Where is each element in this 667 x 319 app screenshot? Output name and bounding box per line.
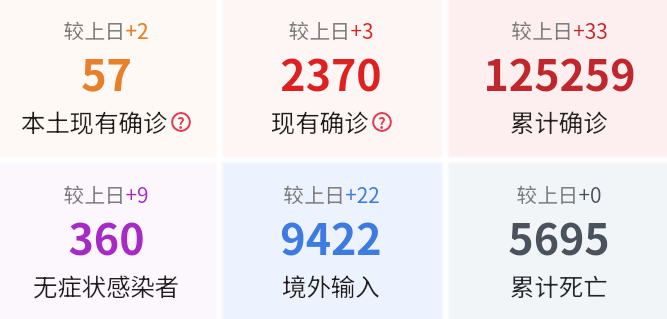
button[interactable] [445, 0, 667, 160]
staticText: 9422 [280, 205, 382, 267]
staticText: 本土现有确诊 [21, 104, 168, 139]
staticText: 累计死亡 [510, 268, 608, 303]
staticText: 较上日+0 [516, 179, 602, 209]
staticText: 较上日+33 [511, 15, 608, 45]
button[interactable]: 说明 [171, 112, 191, 132]
staticText: 较上日+2 [63, 15, 149, 45]
staticText: 较上日+9 [63, 179, 149, 209]
staticText: 境外输入 [282, 268, 380, 303]
staticText: 无症状感染者 [33, 268, 180, 303]
button[interactable]: 说明 [372, 112, 392, 132]
staticText: 较上日+3 [288, 15, 374, 45]
staticText: ? [177, 112, 185, 132]
staticText: ? [378, 112, 386, 132]
staticText: 2370 [280, 41, 382, 103]
staticText: 现有确诊 [271, 104, 369, 139]
staticText: 360 [68, 205, 145, 267]
staticText: 累计确诊 [510, 104, 608, 139]
button[interactable] [220, 0, 446, 160]
staticText: 57 [81, 41, 132, 103]
button[interactable] [445, 160, 667, 319]
button[interactable] [220, 160, 446, 319]
button[interactable] [0, 0, 220, 160]
button[interactable] [0, 160, 220, 319]
staticText: 125259 [483, 41, 636, 103]
staticText: 5695 [508, 205, 610, 267]
staticText: 较上日+22 [283, 179, 380, 209]
